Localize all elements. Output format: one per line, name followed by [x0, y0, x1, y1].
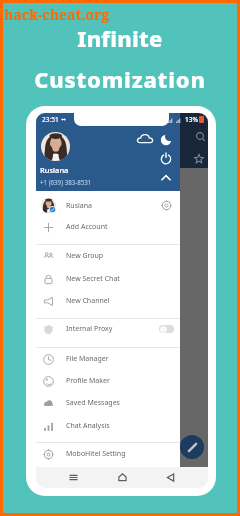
button[interactable]: Saved Messages [36, 392, 180, 414]
button[interactable]: MoboHitel Setting [36, 443, 180, 465]
staticText: MoboHitel Setting [66, 449, 126, 459]
staticText: 23:51 [42, 115, 59, 124]
staticText: Customization [34, 64, 206, 94]
staticText: Profile Maker [66, 376, 110, 386]
button[interactable]: Ruslana [36, 193, 180, 218]
button[interactable]: Internal Proxy [36, 318, 180, 340]
staticText: Ruslana [40, 165, 69, 175]
button[interactable]: Back [160, 467, 181, 488]
button[interactable]: Recent apps [63, 467, 84, 488]
staticText: hack-cheat.org [4, 5, 110, 24]
button[interactable]: Chat Analysis [36, 415, 180, 437]
staticText: New Channel [66, 296, 110, 306]
staticText: File Manager [66, 354, 109, 364]
button[interactable]: New Channel [36, 290, 180, 312]
staticText: 13% [185, 115, 198, 124]
staticText: Ruslana [66, 201, 93, 211]
button[interactable]: Add Account [36, 216, 180, 238]
staticText: Chat Analysis [66, 421, 110, 431]
staticText: New Secret Chat [66, 274, 120, 284]
staticText: New Group [66, 251, 104, 261]
staticText: Saved Messages [66, 398, 120, 408]
button[interactable]: Home [112, 467, 133, 488]
button[interactable]: New Group [36, 245, 180, 267]
staticText: Infinite [77, 23, 163, 53]
button[interactable]: Profile Maker [36, 370, 180, 392]
staticText: Add Account [66, 222, 108, 232]
button[interactable]: New message [180, 435, 204, 459]
button[interactable]: New Secret Chat [36, 268, 180, 290]
button[interactable]: File Manager [36, 348, 180, 370]
staticText: Internal Proxy [66, 324, 113, 334]
staticText: +1 (639) 383-8531 [40, 178, 92, 186]
